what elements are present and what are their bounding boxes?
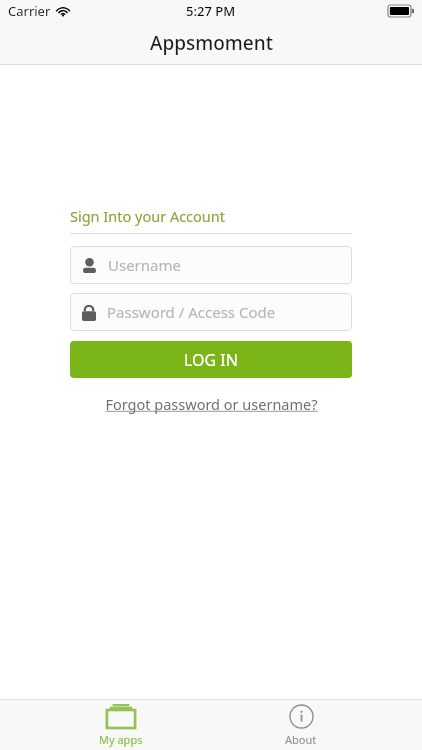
staticText: My apps (99, 732, 143, 747)
button[interactable]: Username (70, 246, 352, 284)
staticText: Appsmoment (150, 30, 273, 56)
staticText: Username (108, 255, 181, 275)
button[interactable]: About (241, 700, 361, 750)
button[interactable]: My apps (61, 700, 181, 750)
staticText: Password / Access Code (107, 302, 276, 322)
button[interactable]: Password / Access Code (70, 293, 352, 331)
staticText: About (285, 732, 317, 747)
staticText: Sign Into your Account (70, 206, 226, 226)
staticText: LOG IN (184, 349, 238, 371)
button[interactable]: Forgot password or username? (105, 394, 318, 414)
staticText: 5:27 PM (186, 2, 236, 20)
button[interactable]: LOG IN (70, 341, 352, 378)
staticText: Carrier (8, 2, 51, 20)
